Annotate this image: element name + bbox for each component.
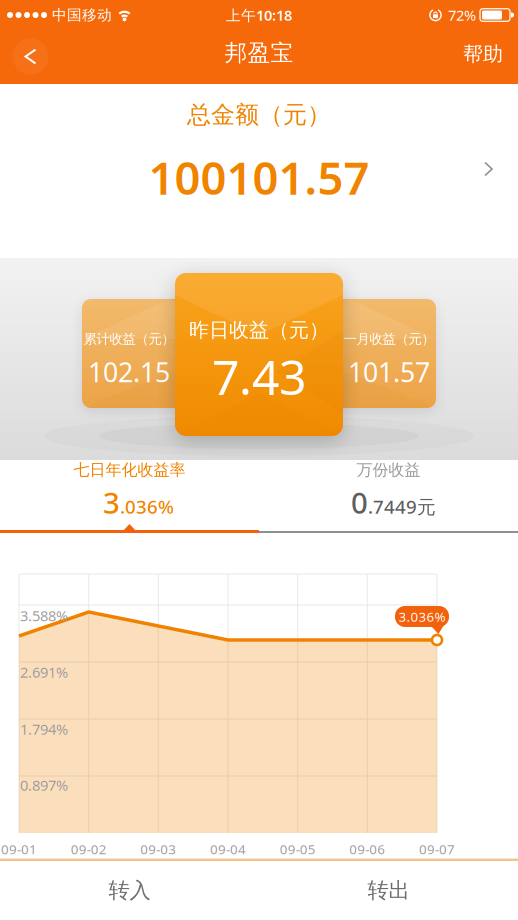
staticText: 7.43 — [212, 345, 306, 408]
staticText: .7449元 — [368, 494, 436, 519]
button[interactable]: 转出 — [259, 861, 518, 920]
staticText: 一月收益（元） — [343, 331, 434, 347]
staticText: 0.897% — [20, 775, 68, 795]
button[interactable]: 转入 — [0, 861, 259, 920]
staticText: 昨日收益（元） — [189, 318, 329, 342]
staticText: 3 — [103, 483, 120, 522]
staticText: 1.794% — [20, 719, 68, 739]
staticText: 帮助 — [463, 42, 503, 66]
staticText: 转入 — [108, 877, 150, 904]
staticText: 102.15 — [88, 354, 170, 390]
staticText: 累计收益（元） — [83, 331, 174, 347]
staticText: 100101.57 — [148, 147, 369, 207]
staticText: 09-05 — [280, 840, 316, 858]
staticText: 09-01 — [1, 840, 37, 858]
staticText: 09-02 — [71, 840, 107, 858]
staticText: 09-03 — [140, 840, 176, 858]
button[interactable]: 万份收益 — [259, 460, 518, 522]
staticText: 3.588% — [20, 606, 68, 625]
button[interactable]: Back — [0, 35, 56, 79]
button[interactable]: 总金额（元） — [0, 84, 518, 258]
staticText: .036% — [120, 494, 174, 519]
staticText: 转出 — [367, 877, 409, 904]
staticText: 万份收益 — [356, 460, 420, 480]
staticText: 中国移动 — [52, 6, 112, 24]
button[interactable]: 帮助 — [463, 30, 518, 84]
staticText: 邦盈宝 — [224, 39, 293, 67]
staticText: 09-07 — [419, 840, 455, 858]
staticText: 总金额（元） — [187, 100, 331, 129]
button[interactable]: 七日年化收益率 — [0, 460, 259, 522]
staticText: 七日年化收益率 — [73, 460, 185, 480]
staticText: 上午10:18 — [226, 5, 292, 25]
staticText: 72% — [448, 5, 476, 25]
staticText: 101.57 — [348, 354, 430, 390]
staticText: 09-06 — [349, 840, 385, 858]
staticText: 09-04 — [210, 840, 246, 858]
staticText: 3.036% — [398, 608, 445, 625]
staticText: 0 — [351, 483, 368, 522]
staticText: 2.691% — [20, 662, 68, 682]
